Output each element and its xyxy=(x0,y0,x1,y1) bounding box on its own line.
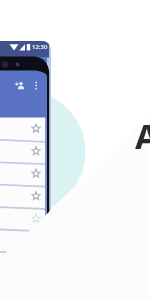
staticText: 12:30 xyxy=(32,43,48,51)
staticText: A xyxy=(135,113,150,159)
button[interactable]: More options xyxy=(33,79,39,91)
button[interactable]: Add person xyxy=(14,79,26,91)
